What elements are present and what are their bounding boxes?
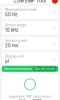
staticText: Recommendation	[4, 67, 32, 71]
button[interactable]: Record	[52, 0, 58, 4]
staticText: µT	[5, 59, 10, 64]
staticText: Supported EMF adjustment	[8, 95, 51, 98]
staticText: v	[53, 42, 55, 45]
button[interactable]: Sensor range	[2, 21, 58, 35]
staticText: 20 ms	[5, 43, 18, 48]
button[interactable]: Measurement mode	[2, 6, 58, 19]
staticText: v	[53, 10, 55, 14]
staticText: Low EMF Tool	[14, 0, 46, 4]
button[interactable]: Sampling rate	[2, 37, 58, 50]
staticText: Sampling rate	[5, 39, 27, 43]
staticText: Can be used	[34, 67, 54, 70]
button[interactable]: Recommendation	[2, 66, 58, 72]
staticText: % Turns EOM	[19, 98, 41, 100]
staticText: Display unit	[5, 54, 24, 58]
button[interactable]: Display unit	[2, 52, 58, 66]
staticText: 50 Hz	[5, 12, 17, 17]
staticText: Sensor range	[5, 23, 26, 27]
staticText: 10 kHz	[5, 28, 18, 33]
staticText: v	[53, 57, 55, 61]
staticText: Measurement mode	[5, 8, 37, 12]
staticText: v	[53, 26, 55, 30]
